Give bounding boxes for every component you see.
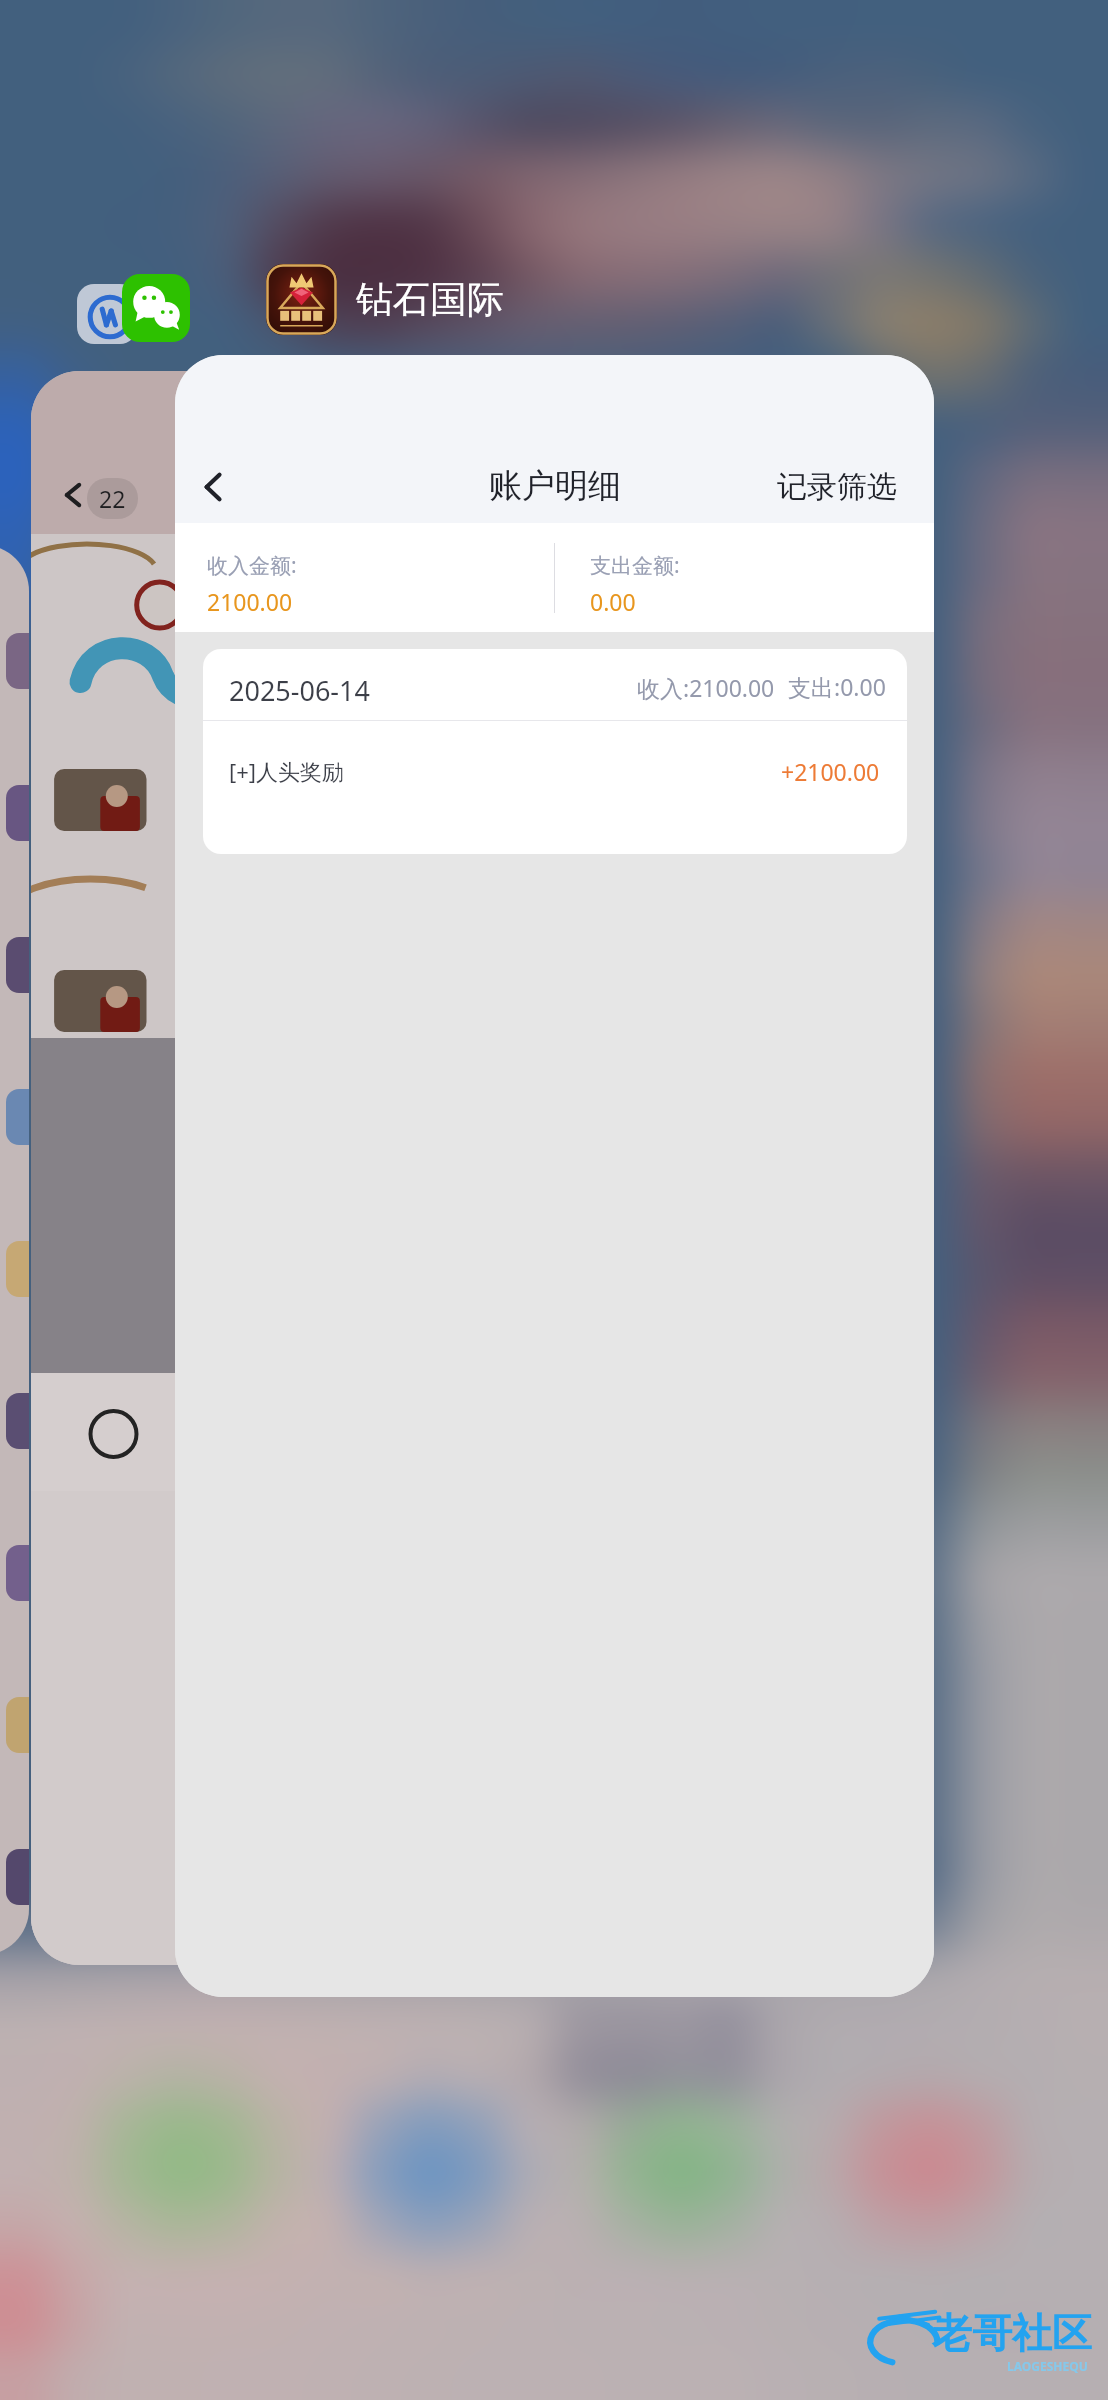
button[interactable]: 钻石国际 [266, 264, 504, 335]
staticText: +2100.00 [781, 756, 880, 787]
staticText: 账户明细 [489, 465, 621, 507]
staticText: 2025-06-14 [229, 672, 370, 709]
staticText: 钻石国际 [356, 276, 504, 323]
button[interactable]: WPS Office [77, 284, 137, 344]
button[interactable]: 记录筛选 [753, 454, 921, 520]
staticText: 支出金额: [590, 551, 680, 580]
button[interactable]: Recent app [0, 545, 29, 1955]
button[interactable]: Back [175, 450, 249, 524]
button[interactable]: Back [39, 461, 107, 529]
staticText: 0.00 [590, 586, 636, 617]
button[interactable]: 22 [87, 478, 138, 519]
staticText: 记录筛选 [777, 468, 897, 506]
staticText: 22 [99, 483, 126, 514]
button[interactable]: [+]人头奖励 [203, 721, 907, 821]
staticText: 老哥社区 [932, 2308, 1092, 2358]
button[interactable]: WeChat [122, 274, 190, 342]
staticText: 收入金额: [207, 551, 297, 580]
staticText: 2100.00 [207, 586, 293, 617]
button[interactable]: Back [31, 371, 361, 1965]
staticText: 收入:2100.00 [637, 672, 775, 703]
staticText: 支出:0.00 [788, 671, 886, 702]
staticText: LAOGESHEQU [1007, 2358, 1088, 2374]
staticText: [+]人头奖励 [229, 756, 345, 786]
